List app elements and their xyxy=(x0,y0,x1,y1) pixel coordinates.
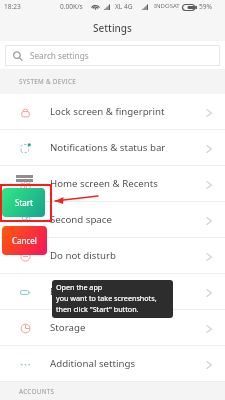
staticText: Start xyxy=(15,197,33,208)
button[interactable]: Storage xyxy=(0,310,225,345)
button[interactable]: Search settings xyxy=(5,45,220,66)
button[interactable]: Second space xyxy=(0,202,225,237)
button[interactable]: Battery & performance xyxy=(0,274,225,309)
staticText: Notifications & status bar xyxy=(50,141,166,154)
staticText: Additional settings xyxy=(50,357,136,370)
button[interactable]: Cancel xyxy=(2,226,47,255)
staticText: 59% xyxy=(199,2,213,11)
button[interactable]: Lock screen & fingerprint xyxy=(0,94,225,129)
staticText: 18:23 xyxy=(4,2,21,11)
staticText: Do not disturb xyxy=(50,249,116,262)
button[interactable]: Start xyxy=(2,188,45,217)
staticText: XL 4G xyxy=(115,2,133,11)
button[interactable]: Notifications & status bar xyxy=(0,130,225,165)
staticText: Second space xyxy=(50,213,112,226)
staticText: 0.00K/s xyxy=(60,2,83,11)
staticText: Storage xyxy=(50,321,86,334)
staticText: Battery & performance xyxy=(50,285,155,298)
button[interactable]: Do not disturb xyxy=(0,238,225,273)
staticText: Settings xyxy=(93,21,132,35)
button[interactable]: Additional settings xyxy=(0,346,225,381)
staticText: Lock screen & fingerprint xyxy=(50,105,165,118)
staticText: SYSTEM & DEVICE xyxy=(19,77,77,86)
staticText: Open the app you want to take screenshot… xyxy=(56,282,157,314)
staticText: Cancel xyxy=(12,235,37,246)
staticText: Search settings xyxy=(30,50,89,61)
staticText: Home screen & Recents xyxy=(50,177,158,190)
staticText: ACCOUNTS xyxy=(19,387,55,396)
button[interactable]: Home screen & Recents xyxy=(0,166,225,201)
staticText: INDOSAT xyxy=(154,2,180,10)
